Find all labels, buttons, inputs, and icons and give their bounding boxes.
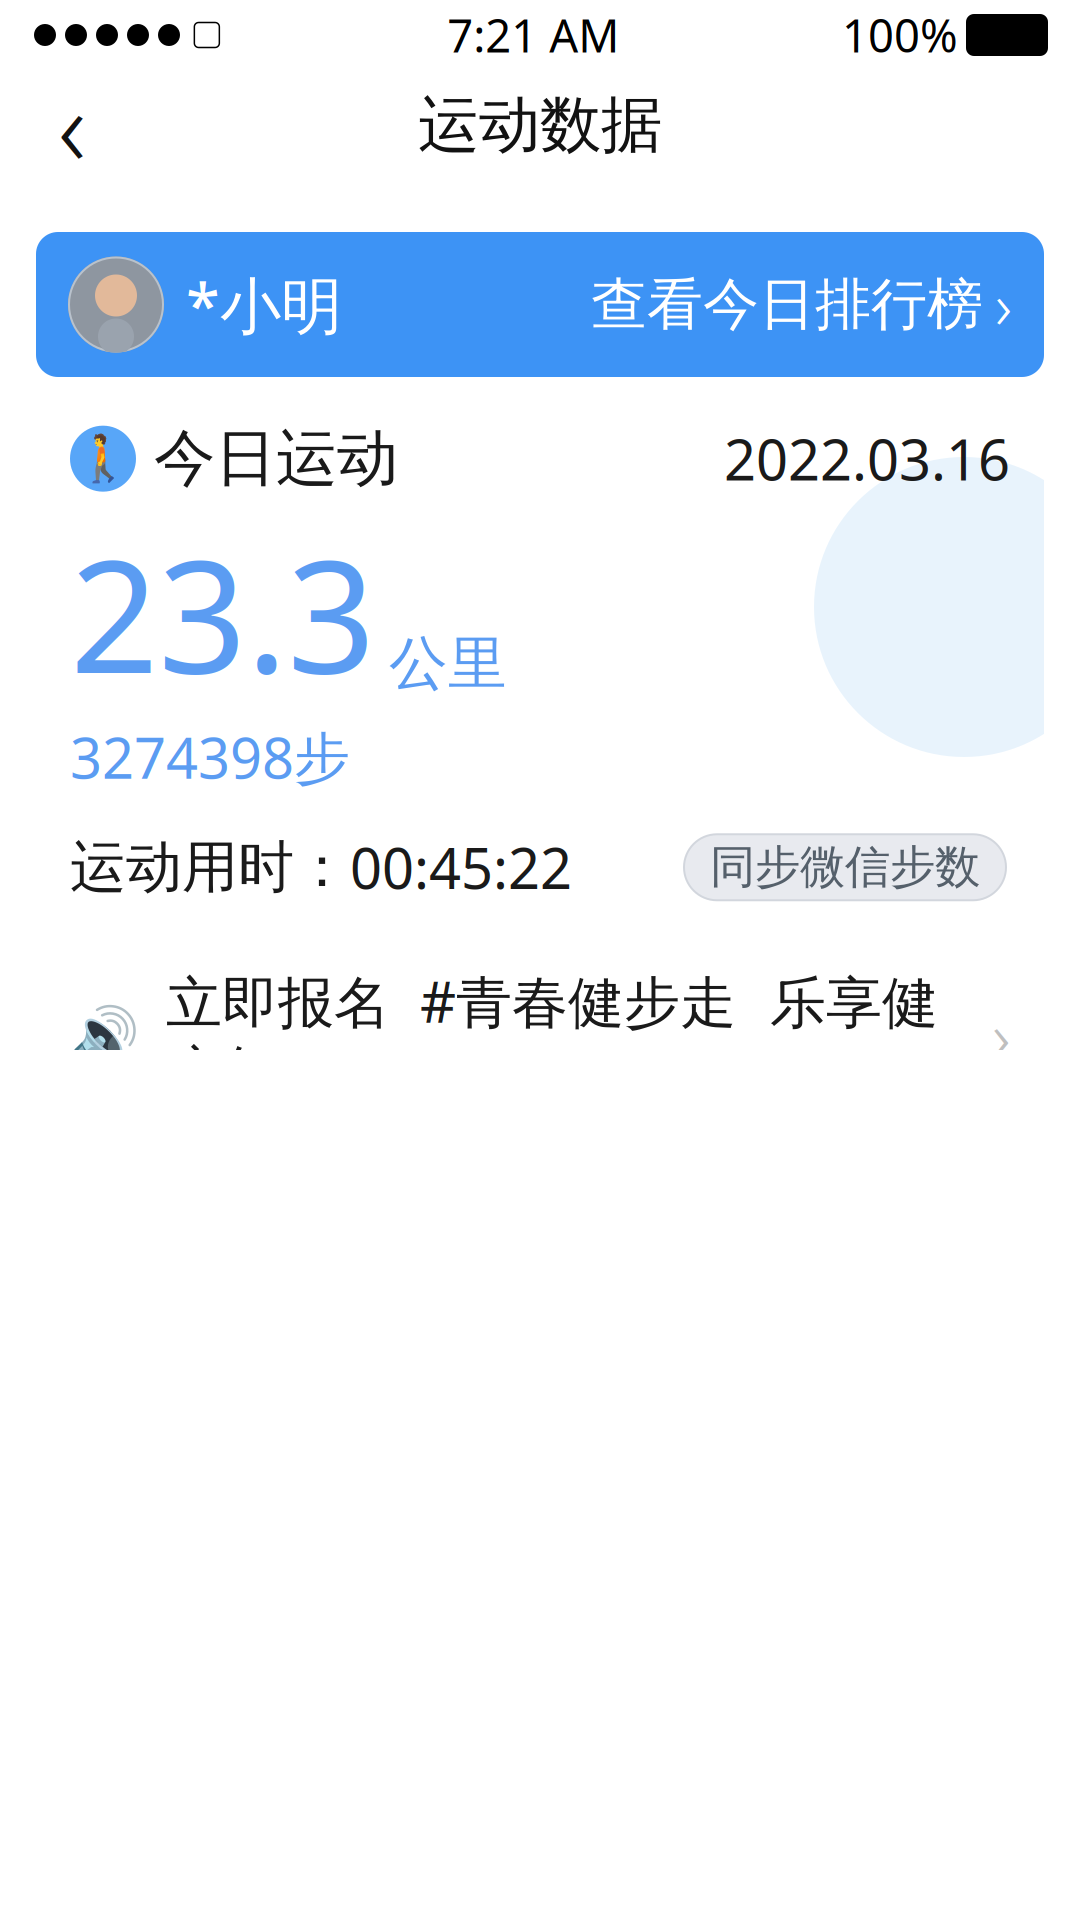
staticText: 7:21 AM	[447, 5, 619, 65]
staticText: 🚶	[75, 433, 131, 485]
staticText: ‹	[58, 54, 86, 196]
staticText: 立即报名 #青春健步走 乐享健康年	[166, 964, 938, 1107]
staticText: ›	[995, 262, 1012, 347]
staticText: 00:45:22	[350, 830, 572, 904]
staticText: 运动用时：	[70, 833, 350, 902]
button[interactable]: 🔊	[36, 976, 1044, 1094]
button[interactable]: 返回	[22, 75, 122, 175]
staticText: 100%	[842, 5, 958, 65]
staticText: 公里	[389, 628, 507, 700]
staticText: 🔊	[70, 1003, 140, 1067]
staticText: ›	[992, 989, 1010, 1081]
staticText: 运动数据	[418, 87, 662, 163]
staticText: 同步微信步数	[710, 839, 980, 895]
staticText: 今日运动	[154, 421, 398, 496]
button[interactable]: *小明	[36, 232, 1044, 377]
staticText: 查看今日排行榜	[591, 270, 983, 339]
staticText: 2022.03.16	[724, 421, 1010, 496]
staticText: 23.3	[70, 510, 375, 716]
staticText: *小明	[186, 264, 342, 345]
staticText: 3274398步	[70, 720, 350, 794]
button[interactable]: 同步微信步数	[684, 834, 1006, 900]
